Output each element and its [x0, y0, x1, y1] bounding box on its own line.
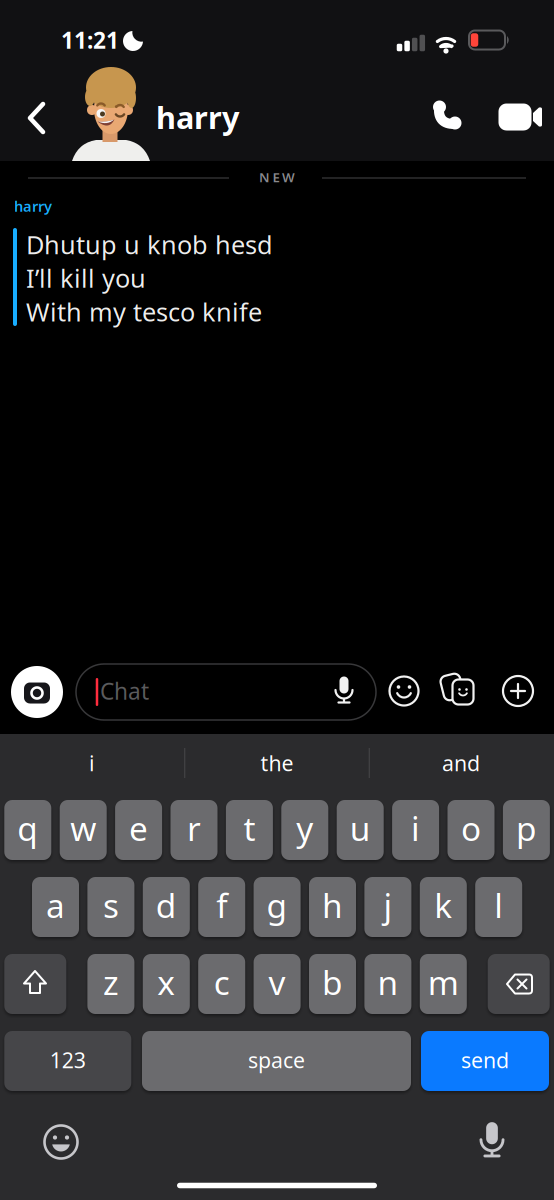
button[interactable]: Stickers	[0, 0, 554, 1200]
staticText: u	[350, 806, 371, 850]
staticText: e	[129, 806, 148, 850]
staticText: r	[187, 806, 201, 850]
button[interactable]: Dictation	[0, 0, 554, 1200]
staticText: j	[383, 883, 392, 927]
button[interactable]: t	[0, 0, 554, 1200]
staticText: NEW	[259, 168, 295, 186]
staticText: a	[46, 883, 65, 927]
button[interactable]: 123	[0, 0, 554, 1200]
button[interactable]: x	[0, 0, 554, 1200]
button[interactable]: More	[0, 0, 554, 1200]
button[interactable]: d	[0, 0, 554, 1200]
staticText: harry	[14, 196, 52, 216]
button[interactable]: p	[0, 0, 554, 1200]
button[interactable]: s	[0, 0, 554, 1200]
staticText: c	[214, 960, 230, 1004]
staticText: b	[322, 960, 343, 1004]
staticText: i	[411, 806, 420, 850]
staticText: d	[156, 883, 177, 927]
staticText: m	[428, 960, 459, 1004]
staticText: q	[17, 806, 38, 850]
staticText: the	[260, 749, 293, 777]
button[interactable]: Video call	[0, 0, 554, 1200]
staticText: x	[157, 960, 175, 1004]
button[interactable]: c	[0, 0, 554, 1200]
button[interactable]: h	[0, 0, 554, 1200]
staticText: Dhutup u knob hesd I’ll kill you With my…	[26, 227, 273, 328]
button[interactable]: n	[0, 0, 554, 1200]
button[interactable]: Call	[0, 0, 554, 1200]
button[interactable]: Emoji	[0, 0, 554, 1200]
button[interactable]: v	[0, 0, 554, 1200]
button[interactable]: q	[0, 0, 554, 1200]
button[interactable]: i	[0, 0, 554, 1200]
button[interactable]: j	[0, 0, 554, 1200]
button[interactable]: Camera	[0, 0, 554, 1200]
staticText: h	[322, 883, 343, 927]
button[interactable]: Profile	[0, 0, 554, 1200]
staticText: w	[70, 806, 96, 850]
button[interactable]: Back	[0, 0, 554, 1200]
staticText: o	[461, 806, 481, 850]
staticText: send	[461, 1046, 509, 1074]
button[interactable]: Delete	[0, 0, 554, 1200]
staticText: v	[269, 960, 286, 1004]
staticText: n	[377, 960, 398, 1004]
staticText: and	[442, 749, 480, 777]
staticText: z	[103, 960, 119, 1004]
staticText: space	[248, 1046, 305, 1074]
staticText: l	[494, 883, 503, 927]
staticText: s	[103, 883, 119, 927]
staticText: k	[434, 883, 452, 927]
button[interactable]: z	[0, 0, 554, 1200]
staticText: t	[243, 806, 255, 850]
staticText: i	[89, 749, 95, 777]
button[interactable]: the	[0, 0, 554, 1200]
button[interactable]: y	[0, 0, 554, 1200]
button[interactable]: space	[0, 0, 554, 1200]
button[interactable]: a	[0, 0, 554, 1200]
button[interactable]: l	[0, 0, 554, 1200]
staticText: g	[267, 883, 288, 927]
button[interactable]: and	[0, 0, 554, 1200]
staticText: p	[516, 806, 537, 850]
button[interactable]: r	[0, 0, 554, 1200]
button[interactable]: o	[0, 0, 554, 1200]
staticText: y	[296, 806, 313, 850]
button[interactable]: m	[0, 0, 554, 1200]
staticText: Chat	[100, 676, 149, 706]
button[interactable]: u	[0, 0, 554, 1200]
staticText: harry	[156, 97, 240, 137]
staticText: 11:21	[61, 25, 119, 55]
staticText: f	[216, 883, 227, 927]
button[interactable]: Shift	[0, 0, 554, 1200]
button[interactable]: b	[0, 0, 554, 1200]
staticText: 123	[50, 1046, 86, 1074]
button[interactable]: g	[0, 0, 554, 1200]
button[interactable]: Emoji keyboard	[0, 0, 554, 1200]
button[interactable]: send	[0, 0, 554, 1200]
button[interactable]: k	[0, 0, 554, 1200]
button[interactable]: Chat	[0, 0, 554, 1200]
button[interactable]: e	[0, 0, 554, 1200]
button[interactable]: i	[0, 0, 554, 1200]
button[interactable]: w	[0, 0, 554, 1200]
button[interactable]: f	[0, 0, 554, 1200]
button[interactable]: Voice message	[0, 0, 554, 1200]
